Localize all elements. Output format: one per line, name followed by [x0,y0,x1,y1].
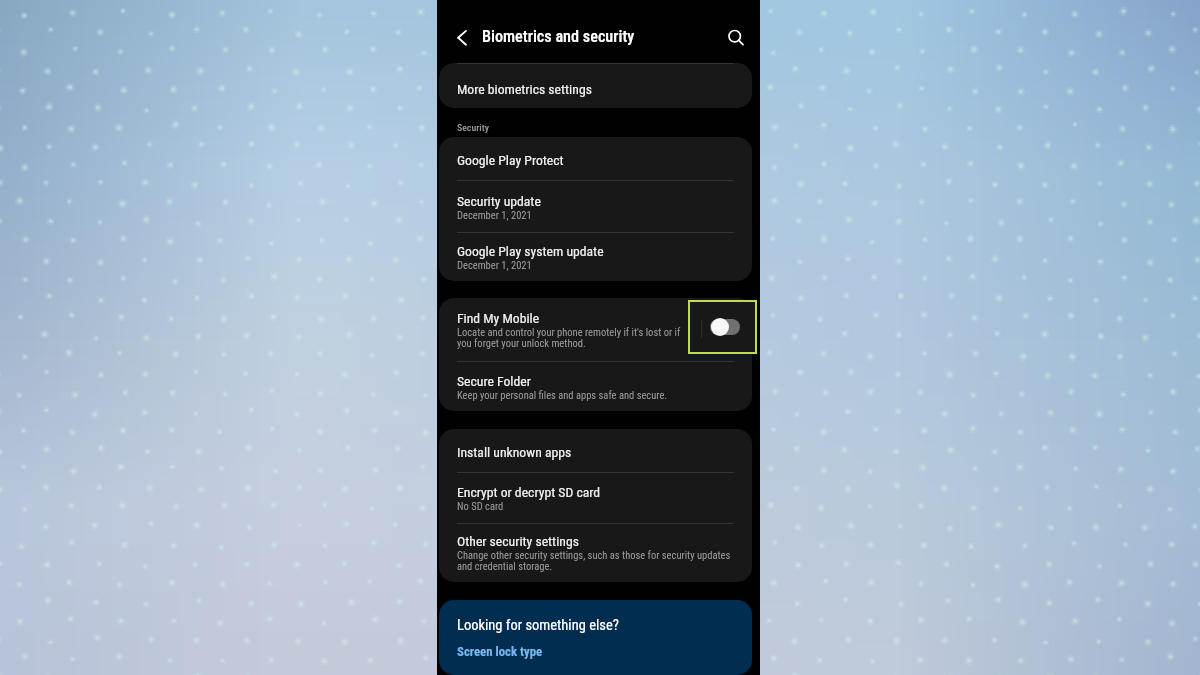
staticText: Biometrics and security [482,27,635,46]
button[interactable]: Secure Folder [439,362,752,411]
button[interactable]: Search [717,18,751,52]
staticText: Other security settings [457,533,579,549]
staticText: Google Play Protect [457,152,564,168]
button[interactable]: Find My Mobile switch [688,300,757,354]
button[interactable]: Navigate up [446,20,480,54]
staticText: Security update [457,193,541,209]
button[interactable]: Screen lock type [439,634,752,668]
staticText: Find My Mobile [457,310,540,326]
staticText: Install unknown apps [457,444,572,460]
button[interactable]: Find My Mobile [439,298,686,361]
staticText: No SD card [457,500,504,512]
button[interactable]: Google Play Protect [439,137,752,180]
staticText: December 1, 2021 [457,209,532,221]
staticText: Google Play system update [457,243,604,259]
staticText: Screen lock type [457,644,543,659]
staticText: Looking for something else? [457,617,619,634]
staticText: Locate and control your phone remotely i… [457,326,684,350]
button[interactable]: Other security settings [439,524,752,582]
staticText: More biometrics settings [457,81,592,97]
staticText: December 1, 2021 [457,259,532,271]
staticText: Encrypt or decrypt SD card [457,484,601,500]
staticText: Change other security settings, such as … [457,549,738,573]
staticText: Keep your personal files and apps safe a… [457,389,668,401]
staticText: Security [457,122,489,133]
button[interactable]: Security update [439,181,752,232]
button[interactable]: Install unknown apps [439,429,752,472]
button[interactable]: Google Play system update [439,233,752,281]
button[interactable]: More biometrics settings [439,63,752,108]
button[interactable]: Encrypt or decrypt SD card [439,473,752,523]
staticText: Secure Folder [457,373,531,389]
